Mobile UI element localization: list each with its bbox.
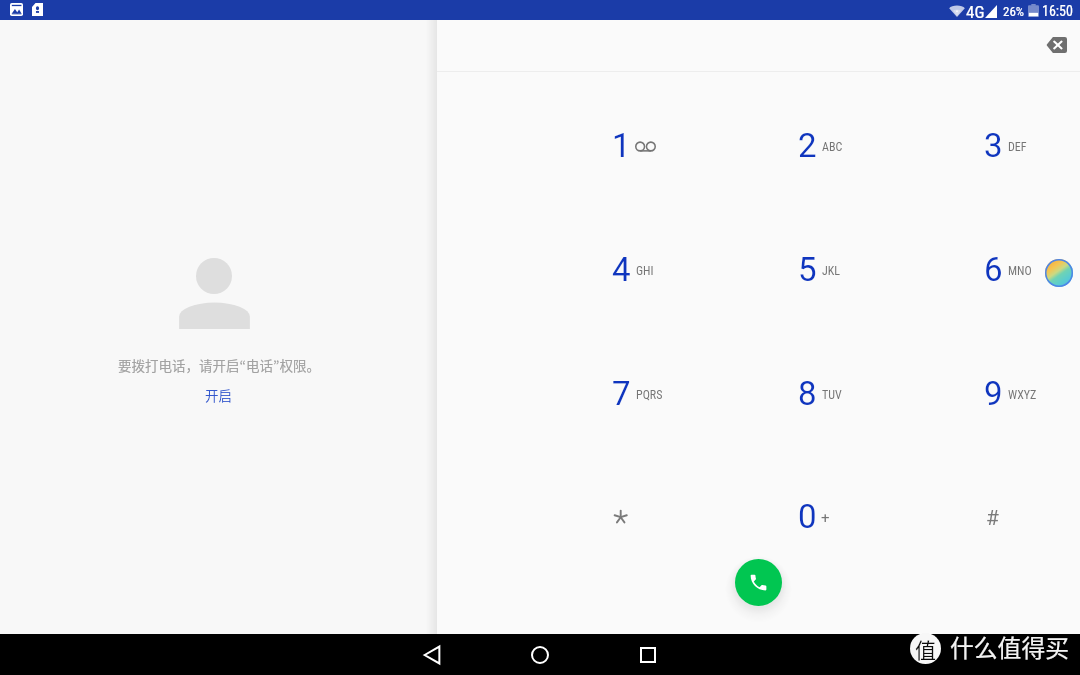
button[interactable]: 9: [951, 332, 1080, 456]
staticText: PQRS: [636, 388, 663, 402]
staticText: 26%: [1003, 4, 1025, 19]
staticText: MNO: [1008, 264, 1032, 278]
staticText: ABC: [822, 140, 843, 154]
staticText: 7: [612, 374, 631, 413]
button[interactable]: Star: [579, 455, 765, 579]
staticText: 5: [798, 250, 817, 289]
button[interactable]: 2: [765, 84, 951, 208]
button[interactable]: 3: [951, 84, 1080, 208]
button[interactable]: 0: [765, 455, 951, 579]
staticText: 什么值得买: [950, 629, 1069, 663]
staticText: #: [986, 506, 999, 531]
staticText: 要拨打电话，请开启“电话”权限。: [118, 355, 320, 375]
staticText: WXYZ: [1008, 388, 1037, 402]
button[interactable]: 7: [579, 332, 765, 456]
staticText: 16:50: [1042, 3, 1073, 19]
staticText: 开启: [205, 385, 232, 405]
staticText: DEF: [1008, 140, 1027, 154]
button[interactable]: Contact: [1045, 259, 1073, 287]
button[interactable]: Call: [735, 559, 782, 606]
staticText: 6: [984, 250, 1003, 289]
staticText: 8: [798, 374, 817, 413]
button[interactable]: 开启: [193, 382, 244, 408]
button[interactable]: 6: [951, 208, 1080, 332]
staticText: 9: [984, 374, 1003, 413]
button[interactable]: #: [951, 455, 1080, 579]
staticText: 值: [915, 634, 936, 664]
button[interactable]: Back: [408, 642, 456, 668]
button[interactable]: 5: [765, 208, 951, 332]
staticText: TUV: [822, 388, 842, 402]
staticText: 3: [984, 126, 1003, 165]
staticText: +: [821, 509, 830, 527]
staticText: 4G: [966, 2, 985, 22]
button[interactable]: 8: [765, 332, 951, 456]
staticText: GHI: [636, 264, 654, 278]
button[interactable]: Recent apps: [624, 642, 672, 668]
button[interactable]: 1: [579, 84, 765, 208]
button[interactable]: Home: [516, 642, 564, 668]
staticText: JKL: [822, 264, 841, 278]
staticText: 2: [798, 126, 817, 165]
staticText: 4: [612, 250, 631, 289]
button[interactable]: 4: [579, 208, 765, 332]
staticText: 0: [798, 497, 817, 536]
staticText: 1: [612, 126, 631, 165]
button[interactable]: Backspace: [1031, 28, 1067, 63]
